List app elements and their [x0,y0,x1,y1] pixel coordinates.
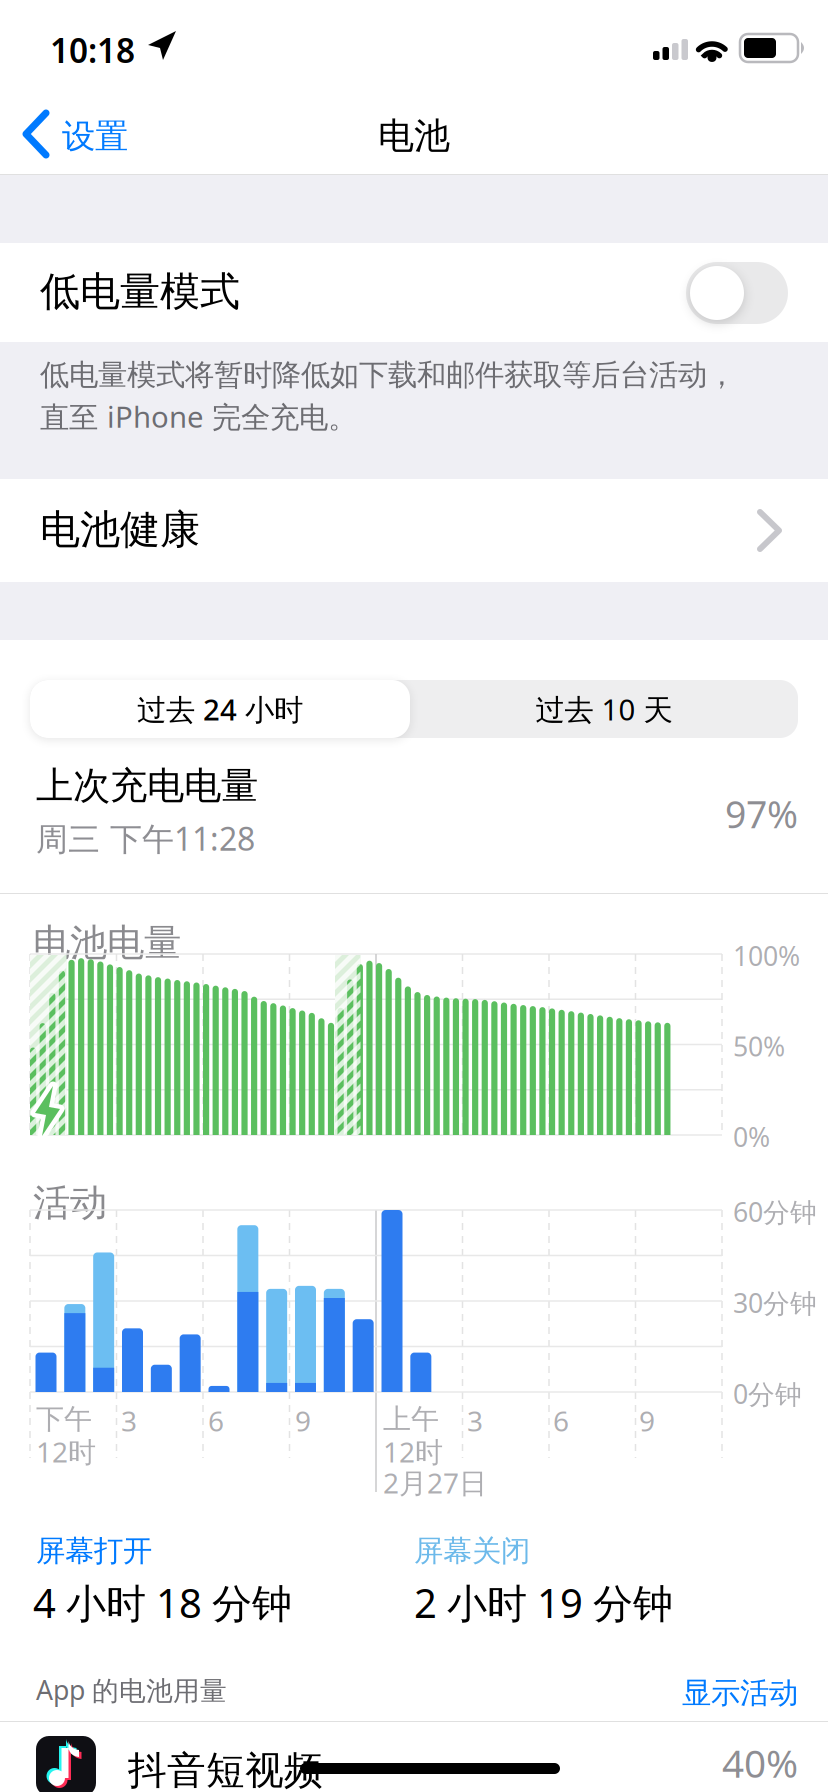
staticText: 100% [733,938,800,973]
staticText: 过去 24 小时 [137,689,303,728]
staticText: 97% [725,789,798,839]
staticText: 6 [553,1402,569,1439]
staticText: 电池 [378,114,450,158]
staticText: 0% [733,1119,770,1154]
staticText: 10:18 [50,28,135,72]
staticText: 屏幕关闭 [414,1533,530,1569]
staticText: 9 [639,1402,655,1439]
button[interactable]: 过去 24 小时 [30,680,410,738]
staticText: 3 [467,1402,483,1439]
staticText: 2月27日 [383,1464,487,1501]
button[interactable]: 低电量模式 [0,243,828,342]
button[interactable]: 过去 10 天 [410,680,798,738]
button[interactable]: 返回设置 [0,0,828,1792]
staticText: 设置 [62,116,128,157]
staticText: 下午 [36,1402,92,1436]
staticText: 显示活动 [682,1675,798,1711]
staticText: 电池电量 [33,920,181,966]
staticText: 低电量模式将暂时降低如下载和邮件获取等后台活动， [40,357,736,393]
staticText: 过去 10 天 [535,689,672,728]
staticText: 3 [121,1402,137,1439]
staticText: 低电量模式 [40,267,240,316]
staticText: 0分钟 [733,1376,802,1411]
button[interactable]: 电池健康 [0,479,828,582]
staticText: 60分钟 [733,1194,817,1229]
staticText: 周三 下午11:28 [36,817,255,859]
staticText: 直至 iPhone 完全充电。 [40,397,357,436]
staticText: 电池健康 [40,505,200,554]
button[interactable]: 抖音短视频 电池用量 40% [0,1736,828,1792]
staticText: 40% [722,1737,798,1788]
staticText: 抖音短视频 [128,1747,323,1792]
staticText: 4 小时 18 分钟 [33,1576,292,1629]
staticText: 6 [208,1402,224,1439]
staticText: 上午 [383,1402,439,1436]
staticText: 上次充电电量 [36,763,258,809]
staticText: 30分钟 [733,1285,817,1320]
staticText: 50% [733,1028,785,1064]
staticText: 活动 [33,1180,107,1226]
staticText: 12时 [36,1433,96,1470]
staticText: 12时 [383,1433,443,1470]
staticText: 9 [295,1402,311,1439]
button[interactable]: 显示活动 [0,1675,798,1711]
staticText: 2 小时 19 分钟 [414,1576,673,1629]
staticText: App 的电池用量 [36,1672,227,1708]
staticText: 屏幕打开 [36,1533,152,1569]
